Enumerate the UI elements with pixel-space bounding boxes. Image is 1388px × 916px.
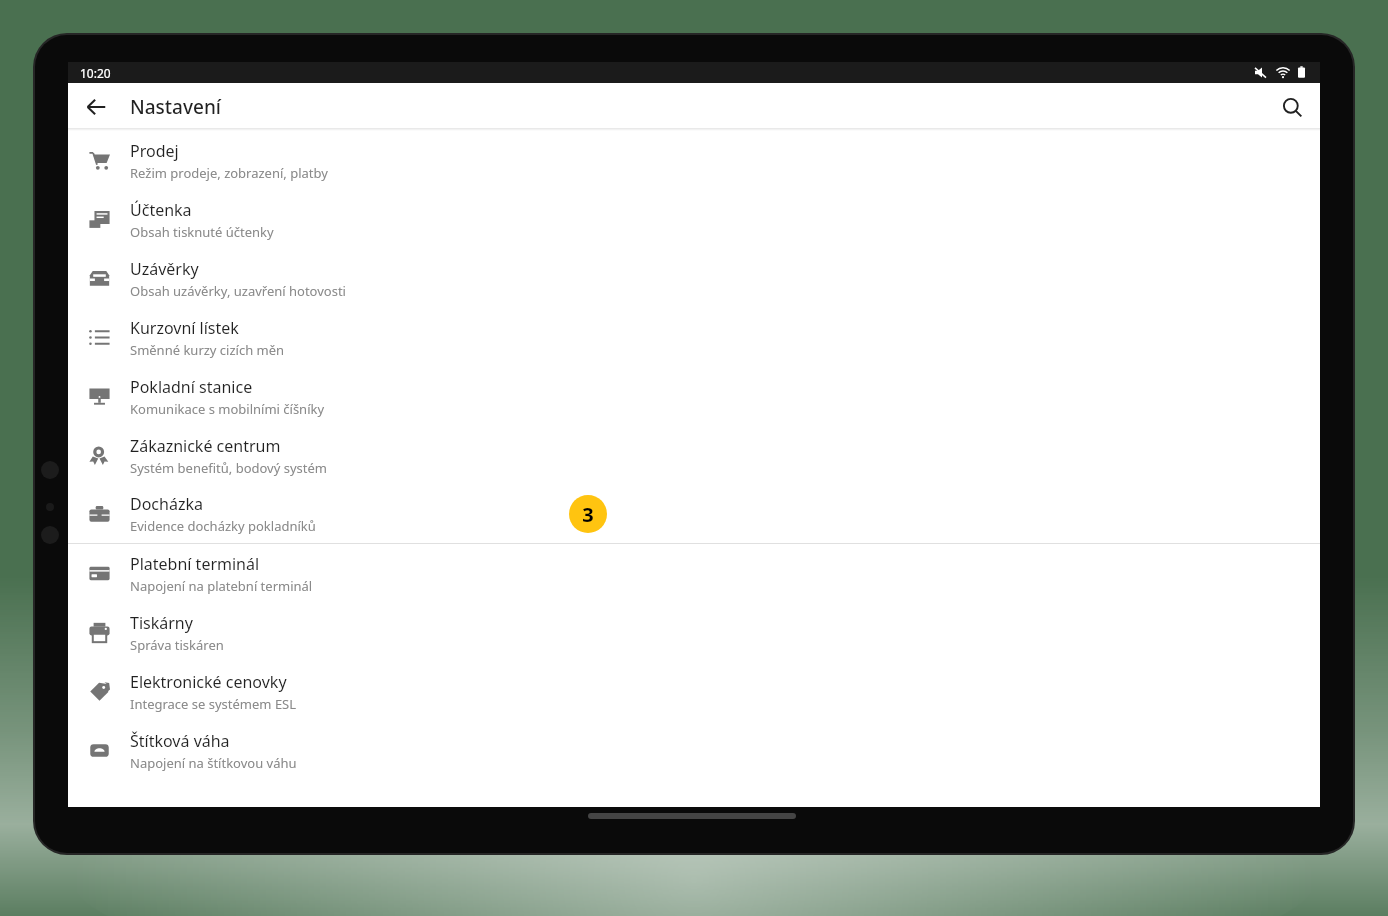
staticText: Zákaznické centrum [130, 435, 281, 457]
staticText: Prodej [130, 140, 179, 162]
staticText: Účtenka [130, 199, 192, 221]
staticText: Evidence docházky pokladníků [130, 517, 316, 535]
staticText: Napojení na platební terminál [130, 577, 313, 595]
button[interactable]: Elektronické cenovky [68, 662, 1320, 721]
button[interactable]: Prodej [68, 131, 1320, 190]
staticText: Tiskárny [130, 612, 193, 634]
button[interactable]: Účtenka [68, 190, 1320, 249]
button[interactable]: Pokladní stanice [68, 367, 1320, 426]
button[interactable]: Zákaznické centrum [68, 426, 1320, 485]
staticText: Štítková váha [130, 730, 230, 752]
staticText: Elektronické cenovky [130, 671, 287, 693]
staticText: Kurzovní lístek [130, 317, 239, 339]
staticText: Docházka [130, 493, 203, 515]
button[interactable]: Docházka [68, 485, 1320, 543]
staticText: Obsah uzávěrky, uzavření hotovosti [130, 282, 346, 300]
staticText: Správa tiskáren [130, 636, 224, 654]
button[interactable]: Štítková váha [68, 721, 1320, 780]
staticText: Pokladní stanice [130, 376, 253, 398]
button[interactable]: Uzávěrky [68, 249, 1320, 308]
staticText: Režim prodeje, zobrazení, platby [130, 164, 328, 182]
button[interactable]: Search [1272, 87, 1312, 127]
staticText: Komunikace s mobilními číšníky [130, 400, 325, 418]
staticText: Směnné kurzy cizích měn [130, 341, 285, 359]
staticText: Nastavení [130, 94, 221, 120]
staticText: Platební terminál [130, 553, 260, 575]
staticText: 10:20 [80, 65, 111, 81]
button[interactable]: Tiskárny [68, 603, 1320, 662]
staticText: Obsah tisknuté účtenky [130, 223, 274, 241]
staticText: Integrace se systémem ESL [130, 695, 297, 713]
button[interactable]: Kurzovní lístek [68, 308, 1320, 367]
staticText: Systém benefitů, bodový systém [130, 459, 328, 477]
staticText: Napojení na štítkovou váhu [130, 754, 297, 772]
staticText: 3 [582, 501, 594, 528]
button[interactable]: Back [76, 87, 116, 127]
button[interactable]: Platební terminál [68, 544, 1320, 603]
staticText: Uzávěrky [130, 258, 199, 280]
